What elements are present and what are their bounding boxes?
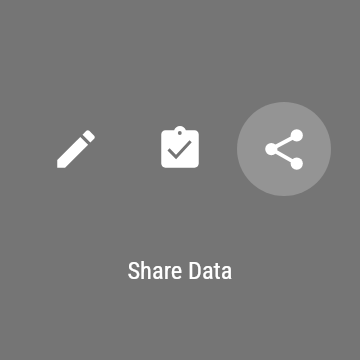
button[interactable]: Edit [29,102,123,196]
button[interactable]: Mark complete [133,102,227,196]
staticText: Share Data [127,256,233,285]
button[interactable]: Share [237,102,331,196]
